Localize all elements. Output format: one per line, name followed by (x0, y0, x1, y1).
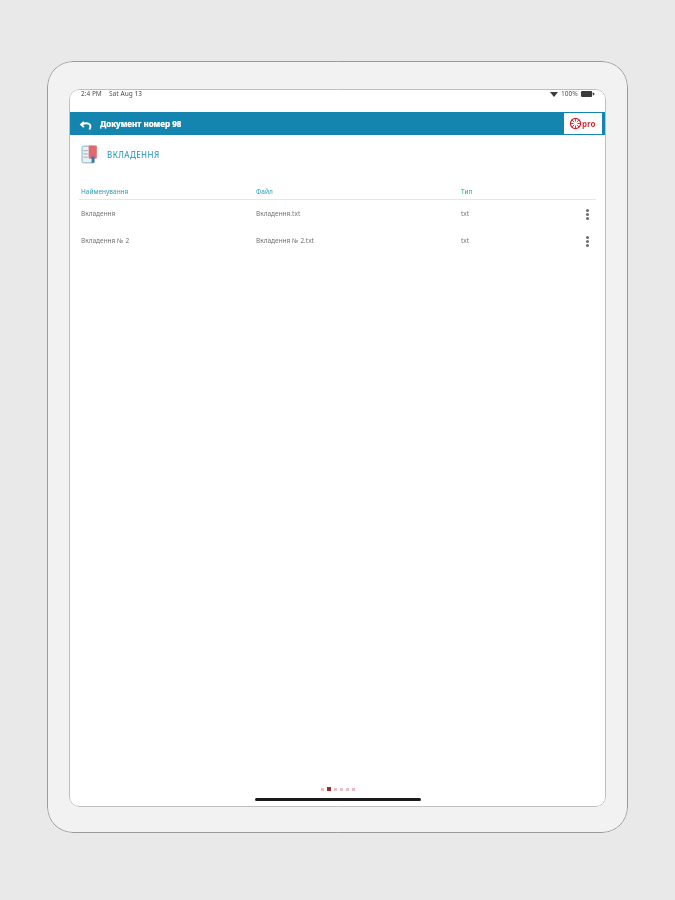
staticText: Тип (461, 187, 596, 196)
button[interactable]: ВКЛАДЕННЯ (69, 135, 606, 173)
staticText: Sat Aug 13 (109, 89, 142, 98)
button[interactable]: Вкладення № 2 (69, 227, 606, 254)
staticText: Вкладення № 2.txt (256, 236, 461, 245)
button[interactable]: IS-pro logo (564, 113, 602, 134)
staticText: Вкладення (81, 209, 256, 218)
staticText: Найменування (81, 187, 256, 196)
button[interactable]: More options (578, 205, 596, 223)
staticText: ВКЛАДЕННЯ (107, 149, 160, 160)
staticText: Файл (256, 187, 461, 196)
button[interactable]: Вкладення (69, 200, 606, 227)
staticText: txt (461, 209, 499, 218)
staticText: 100% (561, 89, 578, 98)
staticText: Вкладення.txt (256, 209, 461, 218)
staticText: Вкладення № 2 (81, 236, 256, 245)
staticText: Документ номер 98 (100, 118, 182, 129)
staticText: 2:4 PM (81, 89, 102, 98)
button[interactable]: Back (77, 115, 95, 133)
staticText: txt (461, 236, 499, 245)
button[interactable]: More options (578, 232, 596, 250)
staticText: pro (582, 118, 596, 129)
